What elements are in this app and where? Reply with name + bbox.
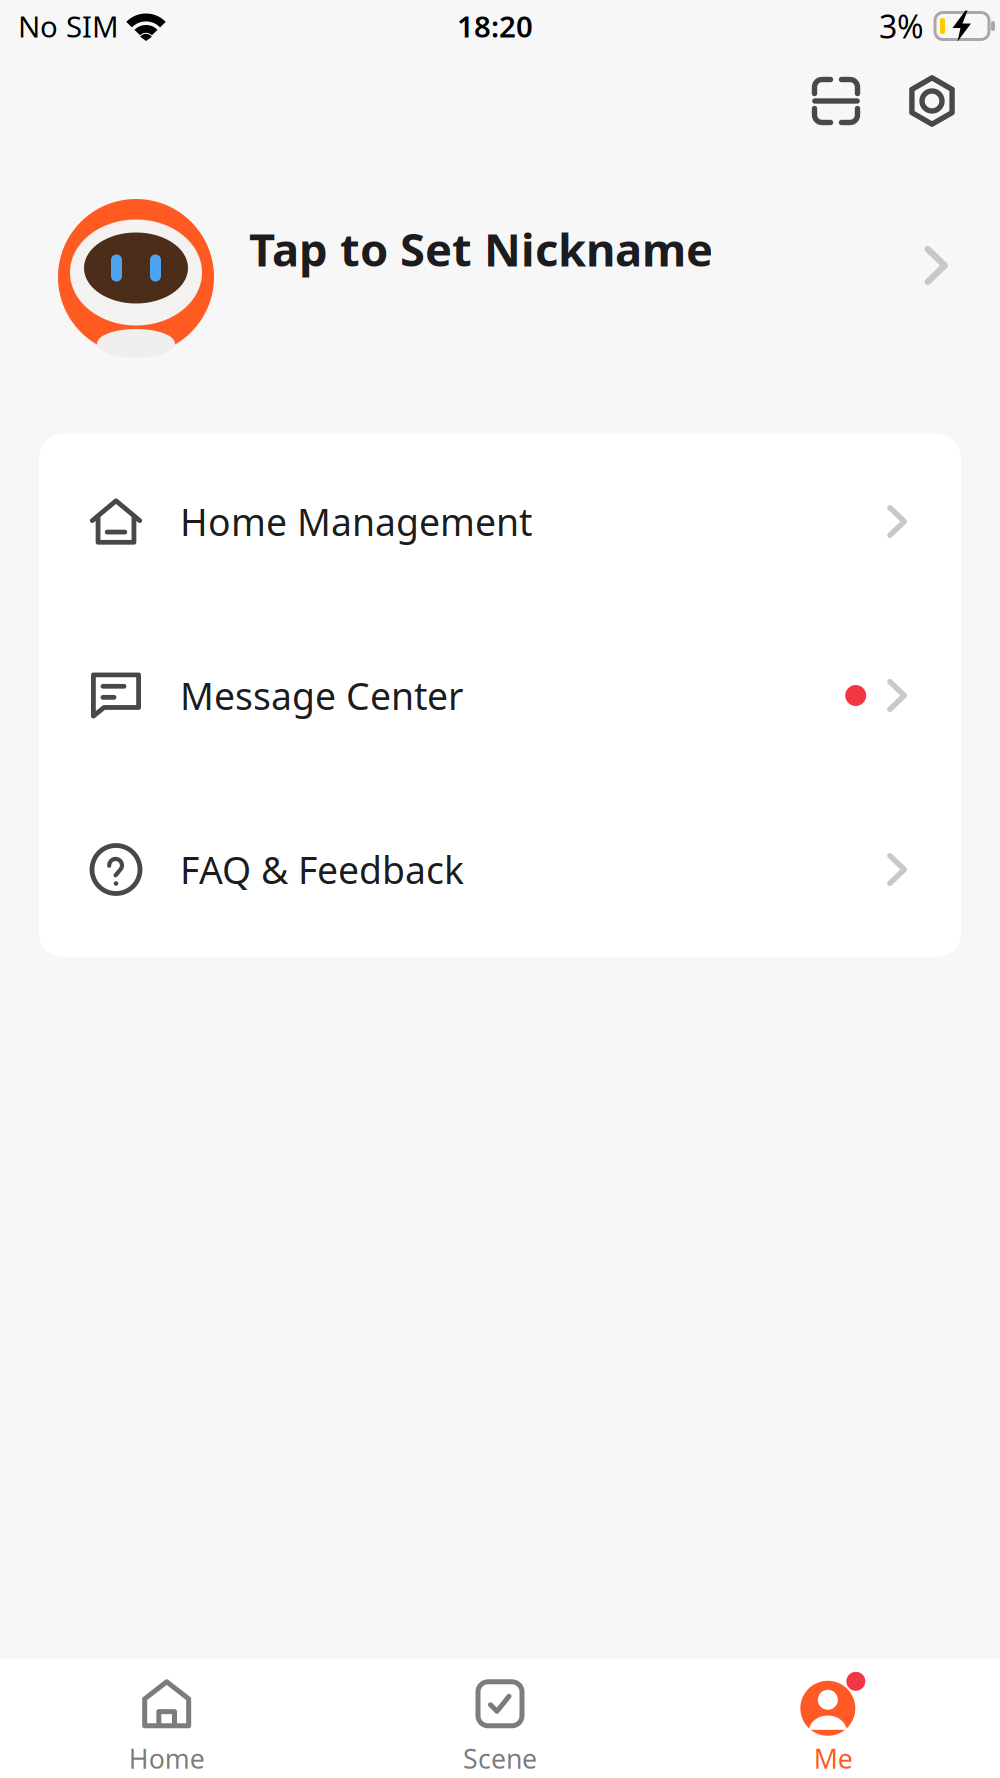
- button[interactable]: Scan: [788, 52, 884, 150]
- staticText: Me: [814, 1741, 853, 1776]
- staticText: 18:20: [457, 6, 533, 45]
- button[interactable]: Home: [0, 1659, 333, 1778]
- button[interactable]: Settings: [884, 52, 980, 150]
- staticText: Tap to Set Nickname: [249, 219, 713, 279]
- staticText: Message Center: [180, 671, 463, 720]
- button[interactable]: Scene: [333, 1659, 667, 1778]
- staticText: No SIM: [18, 6, 119, 45]
- staticText: 3%: [879, 5, 924, 47]
- staticText: Home Management: [180, 497, 532, 546]
- staticText: Home: [129, 1741, 205, 1776]
- button[interactable]: FAQ & Feedback: [39, 782, 961, 956]
- staticText: Scene: [463, 1741, 537, 1776]
- staticText: FAQ & Feedback: [180, 845, 464, 894]
- button[interactable]: Home Management: [39, 434, 961, 608]
- button[interactable]: Message Center: [39, 608, 961, 782]
- button[interactable]: Tap to Set Nickname: [0, 188, 1000, 374]
- button[interactable]: Me: [667, 1659, 1000, 1778]
